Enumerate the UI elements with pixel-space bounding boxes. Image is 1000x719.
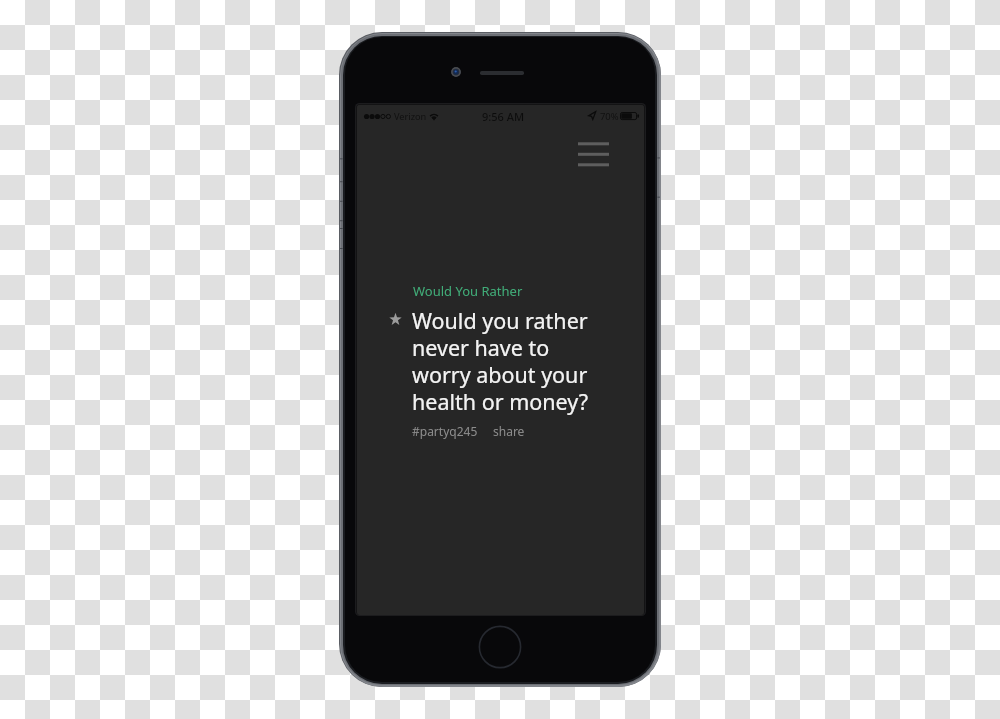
button[interactable]: share <box>493 423 525 439</box>
button[interactable]: Would You Rather <box>413 282 523 300</box>
button[interactable]: Menu <box>578 142 609 166</box>
staticText: 9:56 AM <box>482 109 525 124</box>
staticText: 70% <box>600 110 619 123</box>
button[interactable]: #partyq245 <box>412 423 478 439</box>
staticText: Verizon <box>394 110 427 123</box>
button[interactable]: Home <box>477 624 523 670</box>
staticText: Would you rather never have to worry abo… <box>412 306 595 416</box>
